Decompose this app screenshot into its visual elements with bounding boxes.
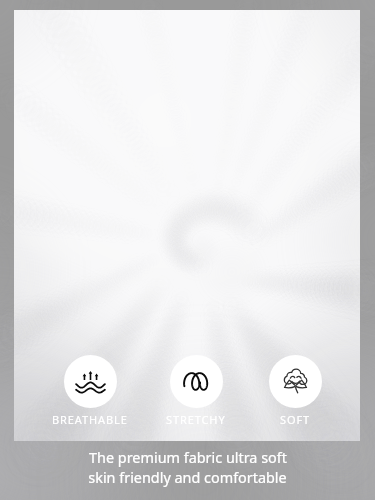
button[interactable]: SOFT — [243, 355, 347, 439]
staticText: skin friendly and comfortable — [88, 468, 287, 488]
staticText: STRETCHY — [166, 412, 226, 427]
staticText: BREATHABLE — [52, 412, 128, 427]
staticText: SOFT — [280, 412, 311, 427]
button[interactable]: STRETCHY — [144, 355, 248, 439]
staticText: The premium fabric ultra soft — [89, 448, 287, 468]
button[interactable]: BREATHABLE — [38, 355, 142, 439]
